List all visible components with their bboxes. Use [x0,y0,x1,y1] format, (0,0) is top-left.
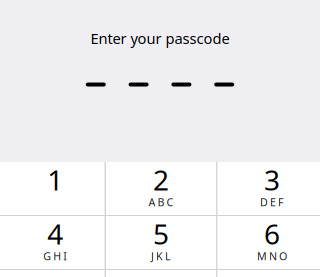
staticText: 3 [264,161,280,198]
staticText: 5 [153,215,169,252]
staticText: G [43,249,51,263]
button[interactable]: 6 [218,216,320,270]
staticText: E [270,195,276,209]
staticText: 6 [264,215,280,252]
button[interactable]: 3 [218,162,320,216]
staticText: F [278,195,284,209]
staticText: O [279,249,287,263]
staticText: I [63,249,67,263]
staticText: 8 [153,269,169,277]
staticText: Enter your passcode [90,28,229,48]
button[interactable]: 2 [106,162,216,216]
staticText: 7 [47,269,63,277]
staticText: M [257,249,267,263]
button[interactable]: 4 [0,216,105,270]
staticText: D [260,195,268,209]
staticText: 2 [153,161,169,198]
staticText: A [149,195,156,209]
staticText: B [158,195,165,209]
staticText: C [167,195,174,209]
button[interactable]: 1 [0,162,105,216]
staticText: J [151,249,154,263]
staticText: N [269,249,277,263]
button[interactable]: 5 [106,216,216,270]
staticText: H [53,249,61,263]
staticText: 9 [264,269,280,277]
staticText: 4 [47,215,63,252]
staticText: K [156,249,163,263]
staticText: 1 [47,161,63,198]
staticText: L [165,249,171,263]
